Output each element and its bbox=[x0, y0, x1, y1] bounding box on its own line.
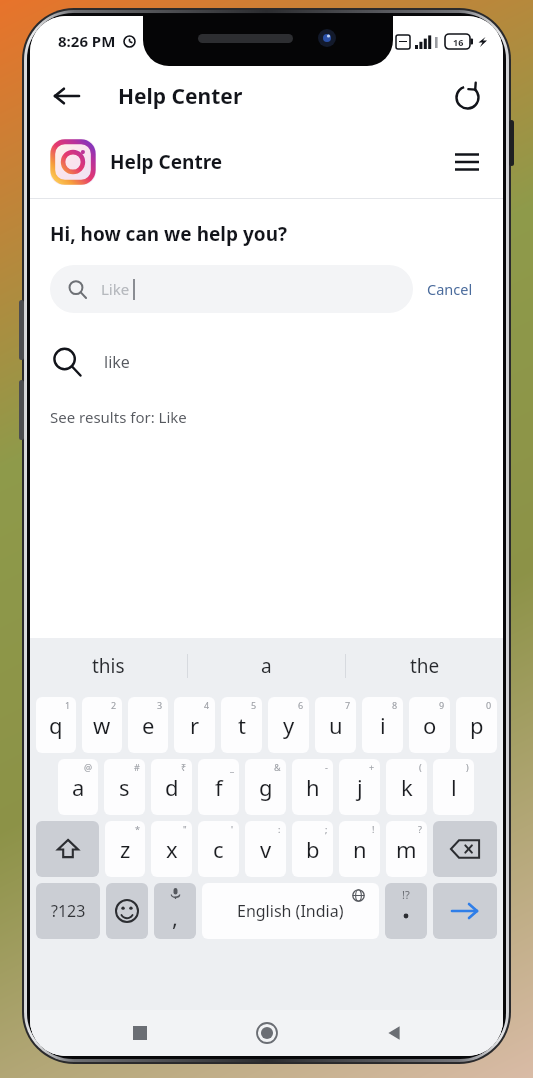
button[interactable]: Backspace bbox=[433, 821, 497, 877]
staticText: See results for: Like bbox=[50, 407, 187, 427]
button[interactable]: * bbox=[105, 821, 145, 877]
staticText: n bbox=[353, 834, 367, 864]
staticText: @ bbox=[84, 761, 93, 773]
button[interactable]: Period bbox=[385, 883, 427, 939]
staticText: Help Centre bbox=[110, 149, 223, 175]
staticText: u bbox=[329, 710, 343, 740]
button[interactable]: Shift bbox=[36, 821, 99, 877]
staticText: 9 bbox=[439, 699, 445, 711]
staticText: 8 bbox=[392, 699, 398, 711]
staticText: d bbox=[165, 772, 179, 802]
button[interactable]: 2 bbox=[82, 697, 122, 753]
staticText: b bbox=[306, 834, 320, 864]
staticText: h bbox=[306, 772, 320, 802]
button[interactable]: Recents bbox=[118, 1011, 162, 1055]
staticText: ) bbox=[466, 761, 469, 773]
button[interactable]: _ bbox=[198, 759, 239, 815]
button[interactable]: 0 bbox=[456, 697, 497, 753]
staticText: r bbox=[190, 710, 200, 740]
staticText: w bbox=[93, 710, 111, 740]
staticText: - bbox=[325, 761, 328, 773]
staticText: e bbox=[142, 710, 155, 740]
staticText: like bbox=[104, 351, 130, 373]
button[interactable]: 9 bbox=[409, 697, 450, 753]
staticText: ! bbox=[372, 823, 375, 835]
staticText: 0 bbox=[486, 699, 492, 711]
staticText: k bbox=[401, 772, 413, 802]
staticText: English (India) bbox=[237, 900, 344, 922]
staticText: 1 bbox=[65, 699, 71, 711]
staticText: ' bbox=[231, 823, 234, 835]
staticText: y bbox=[283, 710, 295, 740]
staticText: the bbox=[410, 653, 440, 679]
staticText: a bbox=[261, 653, 272, 679]
staticText: Cancel bbox=[427, 279, 473, 299]
staticText: 8:26 PM bbox=[58, 31, 116, 51]
button[interactable]: 7 bbox=[315, 697, 356, 753]
staticText: Like bbox=[101, 279, 130, 299]
button[interactable]: 4 bbox=[174, 697, 215, 753]
button[interactable]: Emoji bbox=[106, 883, 148, 939]
button[interactable]: Like bbox=[50, 265, 413, 313]
button[interactable]: 5 bbox=[221, 697, 262, 753]
button[interactable]: ) bbox=[433, 759, 474, 815]
staticText: 16 bbox=[453, 36, 464, 48]
staticText: x bbox=[166, 834, 178, 864]
staticText: v bbox=[260, 834, 272, 864]
button[interactable]: a bbox=[188, 638, 345, 694]
button[interactable]: Comma bbox=[154, 883, 196, 939]
staticText: ? bbox=[418, 823, 422, 835]
button[interactable]: : bbox=[245, 821, 286, 877]
staticText: # bbox=[134, 761, 140, 773]
staticText: p bbox=[470, 710, 484, 740]
staticText: ₹ bbox=[181, 761, 187, 773]
button[interactable]: 6 bbox=[268, 697, 309, 753]
button[interactable]: the bbox=[346, 638, 503, 694]
button[interactable]: Home bbox=[245, 1011, 289, 1055]
staticText: this bbox=[92, 653, 125, 679]
button[interactable]: this bbox=[30, 638, 187, 694]
staticText: Help Center bbox=[118, 82, 243, 111]
button[interactable]: like bbox=[30, 343, 503, 381]
button[interactable]: ! bbox=[339, 821, 380, 877]
button[interactable]: ; bbox=[292, 821, 333, 877]
staticText: z bbox=[120, 834, 131, 864]
button[interactable]: # bbox=[104, 759, 145, 815]
staticText: & bbox=[274, 761, 281, 773]
staticText: _ bbox=[230, 761, 234, 773]
button[interactable]: ( bbox=[386, 759, 427, 815]
button[interactable]: Cancel bbox=[413, 271, 487, 307]
staticText: 6 bbox=[298, 699, 304, 711]
staticText: g bbox=[259, 772, 273, 802]
button[interactable]: See results for: Like bbox=[30, 403, 187, 431]
button[interactable]: 8 bbox=[362, 697, 403, 753]
button[interactable]: Back bbox=[372, 1011, 416, 1055]
button[interactable]: ' bbox=[198, 821, 239, 877]
button[interactable]: Menu bbox=[445, 140, 489, 184]
button[interactable]: ? bbox=[386, 821, 427, 877]
button[interactable]: Refresh bbox=[443, 72, 491, 120]
staticText: 5 bbox=[251, 699, 257, 711]
button[interactable]: + bbox=[339, 759, 380, 815]
button[interactable]: " bbox=[151, 821, 192, 877]
staticText: a bbox=[72, 772, 85, 802]
staticText: Hi, how can we help you? bbox=[50, 221, 288, 247]
staticText: , bbox=[172, 902, 178, 932]
staticText: ; bbox=[325, 823, 328, 835]
staticText: t bbox=[238, 710, 246, 740]
button[interactable]: Symbols bbox=[36, 883, 100, 939]
button[interactable]: ₹ bbox=[151, 759, 192, 815]
staticText: * bbox=[135, 823, 140, 835]
button[interactable]: Back bbox=[42, 72, 90, 120]
staticText: m bbox=[396, 834, 417, 864]
button[interactable]: Space bbox=[202, 883, 379, 939]
button[interactable]: 1 bbox=[36, 697, 76, 753]
staticText: " bbox=[183, 823, 187, 835]
button[interactable]: - bbox=[292, 759, 333, 815]
button[interactable]: Enter bbox=[433, 883, 497, 939]
button[interactable]: @ bbox=[58, 759, 98, 815]
staticText: j bbox=[357, 772, 363, 802]
staticText: 7 bbox=[345, 699, 351, 711]
button[interactable]: 3 bbox=[128, 697, 168, 753]
button[interactable]: & bbox=[245, 759, 286, 815]
